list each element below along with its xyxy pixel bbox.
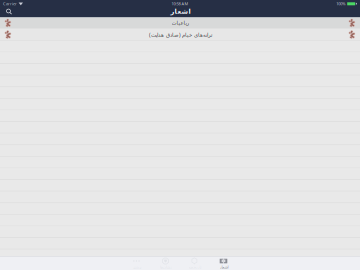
staticText: 100% [336,1,345,6]
staticText: اشعار [170,8,190,15]
staticText: ترانه‌های خیام (صادق هدایت) [148,31,211,38]
staticText: 10:58 AM [171,1,188,6]
button[interactable]: رباعیات [0,18,360,29]
button[interactable]: ترانه‌های خیام (صادق هدایت) [0,29,360,41]
button[interactable]: Search [0,8,18,18]
staticText: Carrier [3,1,17,6]
staticText: اشعار [219,265,228,269]
button[interactable]: اشعار [209,257,238,270]
staticText: رباعیات [171,20,189,26]
